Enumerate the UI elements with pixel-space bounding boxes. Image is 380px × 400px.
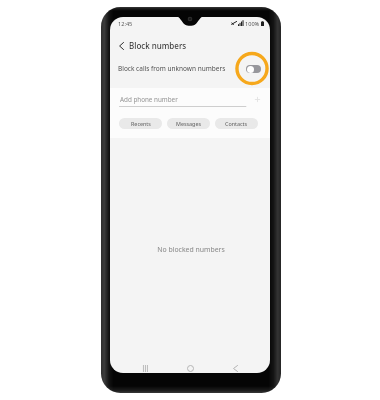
button[interactable]: Back	[115, 39, 128, 52]
staticText: Contacts	[225, 120, 248, 127]
button[interactable]: Recents	[134, 357, 156, 373]
button[interactable]: Messages	[167, 118, 210, 129]
button[interactable]: Recents	[119, 118, 162, 129]
staticText: 100%	[245, 20, 260, 26]
staticText: Block calls from unknown numbers	[118, 64, 226, 73]
button[interactable]: Back	[224, 357, 246, 373]
button[interactable]: Home	[179, 357, 201, 373]
staticText: Recents	[131, 120, 151, 127]
staticText: 12:45	[118, 20, 133, 28]
button[interactable]: Contacts	[215, 118, 258, 129]
staticText: Block numbers	[129, 40, 187, 51]
button[interactable]: Block calls from unknown numbers	[110, 57, 270, 80]
staticText: Add phone number	[120, 95, 178, 104]
button[interactable]: Add contact	[253, 95, 262, 104]
staticText: No blocked numbers	[111, 245, 270, 254]
staticText: Messages	[176, 120, 202, 127]
